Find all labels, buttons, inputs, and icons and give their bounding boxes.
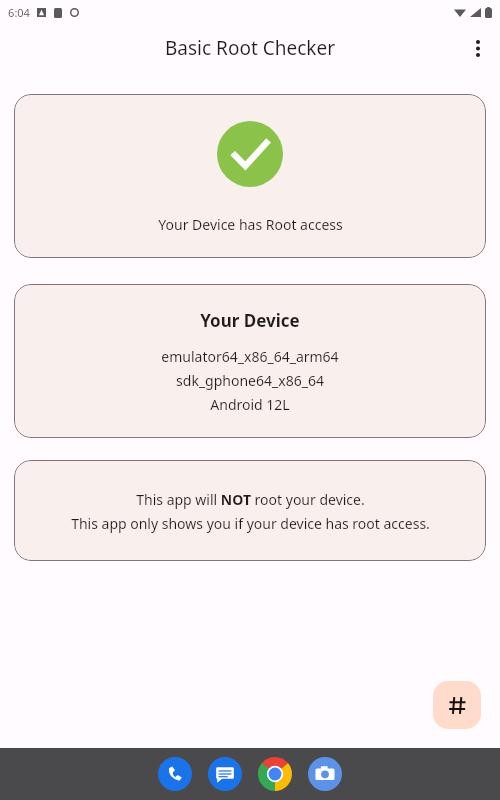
staticText: Android 12L	[210, 395, 290, 414]
button[interactable]: Your Device	[14, 284, 486, 438]
button[interactable]: This app will NOT root your device.	[14, 460, 486, 561]
staticText: Basic Root Checker	[165, 35, 335, 61]
button[interactable]: Camera	[307, 756, 343, 792]
staticText: Your Device	[200, 309, 300, 332]
button[interactable]: More options	[456, 26, 500, 70]
staticText: This app will NOT root your device.	[136, 490, 365, 509]
button[interactable]: Your Device has Root access	[14, 94, 486, 258]
staticText: Your Device has Root access	[158, 215, 343, 234]
staticText: sdk_gphone64_x86_64	[176, 371, 324, 390]
staticText: 6:04	[8, 5, 30, 20]
button[interactable]: Hash	[433, 681, 481, 729]
button[interactable]: Phone	[157, 756, 193, 792]
staticText: This app only shows you if your device h…	[71, 514, 430, 533]
staticText: emulator64_x86_64_arm64	[161, 347, 339, 366]
button[interactable]: Chrome	[257, 756, 293, 792]
button[interactable]: Messages	[207, 756, 243, 792]
